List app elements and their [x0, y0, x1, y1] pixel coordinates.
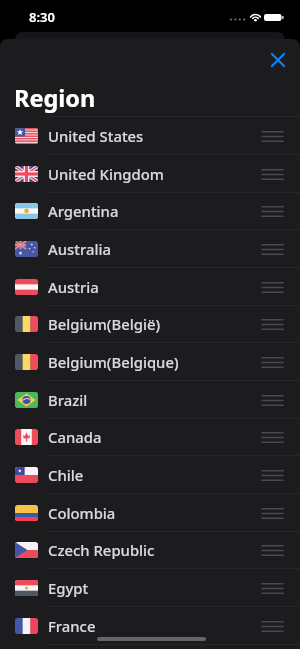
- staticText: Australia: [48, 239, 111, 259]
- staticText: Chile: [48, 465, 84, 485]
- button[interactable]: Australia: [0, 230, 300, 268]
- staticText: Belgium(België): [48, 314, 161, 334]
- button[interactable]: Argentina: [0, 192, 300, 230]
- button[interactable]: Close: [264, 46, 292, 74]
- staticText: Colombia: [48, 503, 116, 523]
- button[interactable]: Chile: [0, 456, 300, 494]
- button[interactable]: Egypt: [0, 569, 300, 607]
- staticText: Egypt: [48, 578, 89, 598]
- staticText: Argentina: [48, 201, 119, 221]
- button[interactable]: United States: [0, 117, 300, 155]
- button[interactable]: Belgium(België): [0, 305, 300, 343]
- button[interactable]: Colombia: [0, 494, 300, 532]
- button[interactable]: Czech Republic: [0, 531, 300, 569]
- button[interactable]: Canada: [0, 418, 300, 456]
- staticText: Brazil: [48, 390, 88, 410]
- button[interactable]: Brazil: [0, 381, 300, 419]
- button[interactable]: United Kingdom: [0, 155, 300, 193]
- staticText: United States: [48, 126, 144, 146]
- staticText: Canada: [48, 427, 102, 447]
- button[interactable]: Belgium(Belgique): [0, 343, 300, 381]
- button[interactable]: Austria: [0, 268, 300, 306]
- staticText: Belgium(Belgique): [48, 352, 179, 372]
- staticText: Austria: [48, 277, 99, 297]
- staticText: Region: [14, 82, 96, 114]
- staticText: France: [48, 616, 96, 636]
- staticText: Czech Republic: [48, 540, 155, 560]
- button[interactable]: France: [0, 607, 300, 645]
- staticText: United Kingdom: [48, 164, 164, 184]
- staticText: 8:30: [29, 8, 55, 26]
